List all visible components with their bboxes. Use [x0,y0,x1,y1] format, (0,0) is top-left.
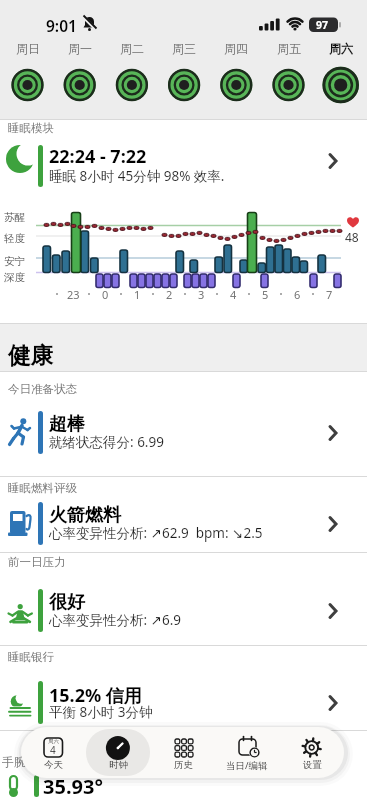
staticText: 健康 [8,341,53,369]
staticText: 历史 [174,759,193,771]
staticText: 就绪状态得分: 6.99 [49,433,164,451]
staticText: 周六 [48,738,59,745]
staticText: 轻度 [4,232,25,245]
button[interactable] [317,61,365,109]
button[interactable] [280,728,344,777]
button[interactable] [0,768,367,800]
staticText: 睡眠 8小时 45分钟 98% 效率. [49,167,225,185]
staticText: 周三 [172,41,196,56]
staticText: 3 [198,287,205,302]
staticText: 当日/编辑 [226,759,268,772]
staticText: 睡眠模块 [8,121,54,135]
button[interactable] [215,728,279,777]
button[interactable]: 22:24 - 7:22 [0,140,367,188]
button[interactable] [0,589,367,629]
staticText: 睡眠燃料评级 [8,481,77,495]
staticText: 4 [50,743,56,757]
button[interactable] [160,61,208,109]
staticText: 安宁 [4,255,25,268]
staticText: 超棒 [49,413,85,436]
staticText: 2 [166,287,173,302]
staticText: 周日 [16,41,40,56]
staticText: 时钟 [109,759,128,771]
staticText: 睡眠银行 [8,650,54,664]
staticText: 9:01 [46,15,77,36]
staticText: 很好 [49,591,85,614]
staticText: 心率变异性分析: ↗6.9 [49,611,182,629]
button[interactable] [21,728,85,777]
staticText: 97 [316,18,329,32]
staticText: 今日准备状态 [8,382,77,396]
staticText: 深度 [4,271,25,284]
staticText: 平衡 8小时 3分钟 [49,703,153,721]
staticText: 手腕温度 [2,754,50,769]
staticText: 周二 [120,41,144,56]
button[interactable] [265,61,313,109]
button[interactable] [108,61,156,109]
staticText: 前一日压力 [8,555,66,569]
staticText: 5 [262,287,269,302]
staticText: 0 [102,287,109,302]
staticText: 苏醒 [4,211,25,224]
staticText: 7 [326,287,333,302]
staticText: 23 [67,287,80,302]
button[interactable] [151,728,215,777]
staticText: 1 [134,287,141,302]
button[interactable] [86,728,150,777]
staticText: 22:24 - 7:22 [49,144,147,169]
staticText: 周四 [224,41,248,56]
staticText: 35.93° [43,773,103,800]
button[interactable] [212,61,260,109]
staticText: 火箭燃料 [49,504,121,527]
staticText: 心率变异性分析: ↗62.9 bpm: ↘2.5 [49,524,263,542]
button[interactable] [56,61,104,109]
staticText: 周五 [277,41,301,56]
staticText: 6 [294,287,301,302]
staticText: 4 [230,287,237,302]
staticText: 15.2% 信用 [49,683,142,708]
staticText: 今天 [44,759,63,771]
button[interactable] [0,411,367,451]
staticText: 周六 [329,41,353,56]
staticText: 48 [345,229,359,245]
staticText: 周一 [68,41,92,56]
button[interactable] [4,61,52,109]
staticText: 设置 [303,759,322,771]
button[interactable] [0,681,367,721]
button[interactable] [0,502,367,542]
